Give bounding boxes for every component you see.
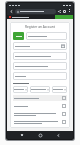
button[interactable] — [13, 52, 67, 60]
button[interactable]: Home — [37, 132, 43, 138]
button[interactable] — [52, 86, 67, 93]
button[interactable] — [13, 72, 67, 80]
button[interactable] — [30, 86, 50, 93]
button[interactable]: Title — [13, 32, 24, 40]
button[interactable]: Tabs — [62, 9, 67, 14]
button[interactable] — [13, 111, 67, 117]
button[interactable]: Recents — [19, 132, 25, 138]
button[interactable] — [13, 62, 67, 70]
button[interactable]: More options — [67, 9, 71, 13]
button[interactable]: Back — [55, 132, 61, 138]
button[interactable] — [13, 119, 67, 125]
button[interactable] — [13, 103, 67, 109]
button[interactable] — [15, 9, 56, 14]
button[interactable] — [26, 32, 67, 40]
staticText: Register an Account — [25, 25, 55, 29]
button[interactable] — [13, 95, 67, 101]
button[interactable]: Share — [57, 9, 62, 14]
button[interactable]: Back — [9, 9, 14, 14]
button[interactable] — [13, 86, 28, 93]
button[interactable] — [13, 42, 67, 50]
